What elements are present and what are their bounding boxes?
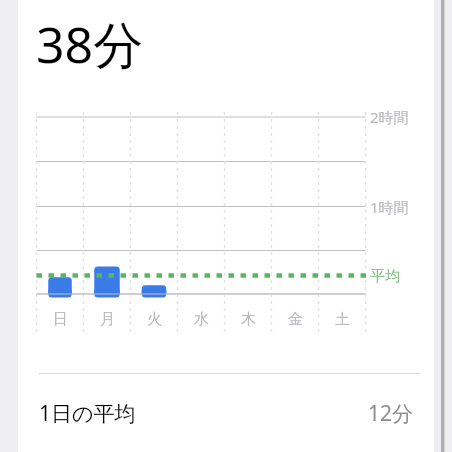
staticText: 火 — [147, 310, 162, 329]
staticText: 1時間 — [370, 197, 409, 217]
staticText: 月 — [100, 310, 115, 329]
staticText: 日 — [53, 310, 68, 329]
staticText: 木 — [241, 310, 256, 329]
staticText: 38分 — [36, 10, 144, 76]
staticText: 金 — [288, 310, 303, 329]
staticText: 2時間 — [370, 107, 409, 127]
button[interactable]: 38分 — [36, 10, 236, 76]
button[interactable]: 1日の平均 — [18, 374, 434, 452]
staticText: 12分 — [368, 399, 414, 428]
staticText: 平均 — [370, 267, 400, 286]
staticText: 土 — [335, 310, 350, 329]
staticText: 水 — [194, 310, 209, 329]
staticText: 1日の平均 — [39, 399, 136, 428]
